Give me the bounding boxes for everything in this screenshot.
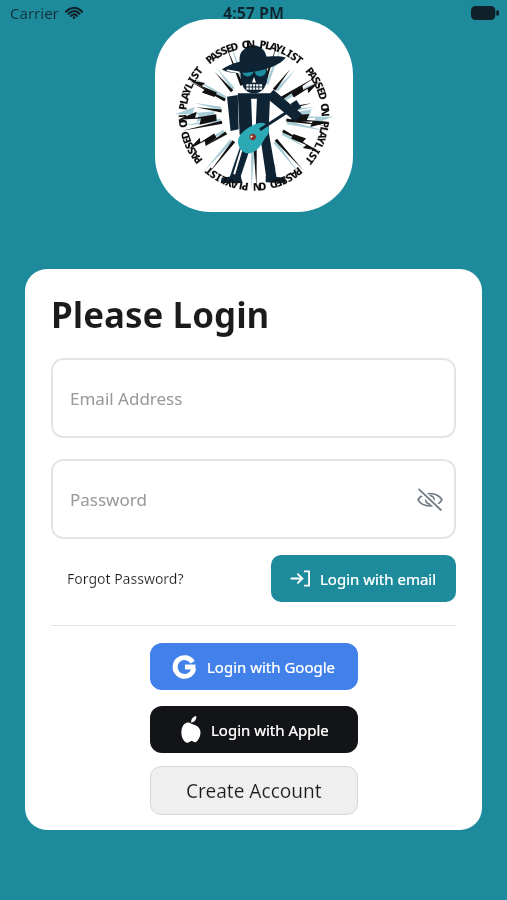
staticText: D	[176, 128, 193, 141]
staticText: L	[217, 172, 229, 189]
staticText: S	[218, 42, 230, 58]
staticText: E	[223, 40, 235, 56]
staticText: A	[228, 176, 240, 193]
staticText: O	[257, 179, 267, 195]
staticText: L	[279, 42, 291, 59]
staticText: Forgot Password?	[67, 569, 184, 588]
staticText: P	[291, 164, 306, 180]
staticText: A	[268, 38, 280, 55]
staticText: E	[178, 134, 195, 146]
staticText: S	[309, 74, 325, 87]
staticText: O	[174, 118, 190, 129]
staticText: Y	[222, 174, 235, 191]
button[interactable]: Create Account	[150, 766, 358, 815]
staticText: S	[288, 48, 302, 64]
staticText: S	[311, 79, 328, 92]
staticText: Y	[313, 134, 330, 147]
staticText: Password	[70, 488, 147, 511]
other: Passed On Playlist logo	[155, 19, 353, 212]
staticText: T	[302, 153, 318, 168]
staticText: N	[252, 180, 262, 195]
staticText: Login with email	[320, 569, 437, 589]
staticText: L	[316, 125, 332, 135]
staticText: L	[175, 96, 192, 106]
staticText: L	[181, 78, 197, 91]
staticText: S	[212, 44, 226, 61]
staticText: A	[176, 90, 193, 102]
staticText: O	[318, 102, 334, 113]
staticText: S	[183, 144, 199, 157]
staticText: P	[175, 102, 190, 111]
staticText: T	[190, 63, 206, 77]
staticText: A	[305, 67, 322, 82]
staticText: D	[267, 176, 280, 193]
staticText: P	[302, 63, 318, 78]
button[interactable]: Forgot Password?	[51, 563, 188, 594]
button[interactable]: Login with email	[271, 555, 456, 602]
staticText: P	[259, 36, 267, 52]
staticText: O	[241, 36, 251, 52]
staticText: A	[287, 167, 302, 183]
staticText: P	[202, 51, 217, 67]
staticText: L	[234, 178, 244, 194]
staticText: Y	[273, 40, 285, 56]
staticText: Y	[178, 84, 195, 97]
staticText: Email Address	[70, 387, 183, 410]
staticText: Please Login	[51, 291, 270, 339]
staticText: I	[184, 74, 199, 85]
staticText: P	[189, 153, 206, 167]
staticText: S	[180, 139, 197, 152]
staticText: S	[186, 67, 203, 82]
staticText: 4:57 PM	[223, 2, 285, 24]
staticText: E	[313, 85, 330, 97]
button[interactable]: Show password	[417, 489, 443, 510]
staticText: S	[206, 167, 220, 183]
button[interactable]: Email Address	[51, 358, 456, 438]
staticText: A	[315, 129, 331, 141]
staticText: D	[315, 90, 332, 103]
staticText: I	[212, 170, 224, 186]
staticText: P	[241, 179, 249, 195]
staticText: L	[264, 37, 274, 53]
button[interactable]: Login with Apple	[150, 706, 358, 753]
staticText: I	[309, 146, 324, 157]
staticText: S	[305, 149, 321, 163]
staticText: Login with Apple	[211, 720, 329, 740]
staticText: S	[278, 173, 290, 189]
staticText: Login with Google	[207, 657, 336, 677]
staticText: T	[201, 163, 216, 179]
button[interactable]: Login with Google	[150, 643, 358, 690]
staticText: N	[174, 113, 190, 124]
staticText: T	[292, 52, 307, 68]
staticText: N	[246, 36, 256, 51]
staticText: D	[228, 38, 241, 55]
staticText: I	[284, 45, 296, 61]
staticText: Carrier	[10, 3, 59, 23]
staticText: N	[318, 107, 334, 118]
staticText: A	[206, 47, 221, 64]
staticText: E	[273, 175, 285, 191]
staticText: S	[282, 170, 296, 187]
button[interactable]: Password	[51, 459, 456, 539]
staticText: A	[186, 148, 203, 163]
staticText: L	[311, 140, 327, 153]
staticText: Create Account	[186, 778, 322, 804]
staticText: P	[318, 120, 333, 129]
